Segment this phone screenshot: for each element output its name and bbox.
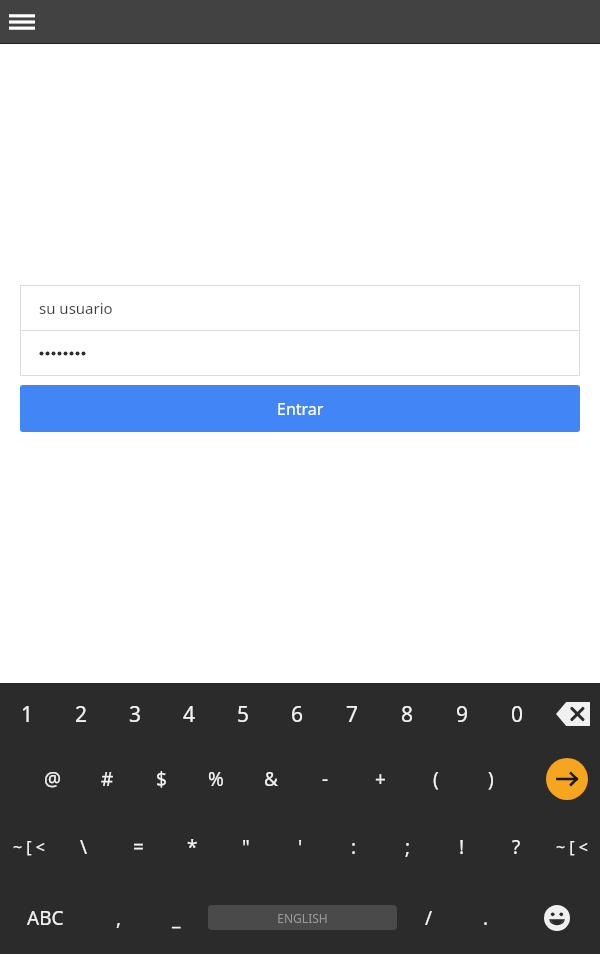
button[interactable]: 0 (490, 683, 545, 745)
button[interactable]: " (219, 813, 273, 881)
staticText: \ (80, 834, 88, 860)
staticText: & (264, 766, 278, 792)
button[interactable]: & (243, 745, 298, 813)
staticText: ; (405, 834, 411, 860)
button[interactable]: Backspace (545, 683, 600, 745)
staticText: . (483, 905, 489, 931)
staticText: ) (488, 766, 494, 792)
button[interactable]: 7 (325, 683, 380, 745)
button[interactable]: / (400, 881, 457, 954)
button[interactable]: , (90, 881, 148, 954)
staticText: % (208, 766, 224, 792)
staticText: @ (44, 766, 62, 792)
button[interactable]: Emoji (514, 881, 600, 954)
staticText: _ (172, 905, 181, 931)
staticText: + (375, 766, 386, 792)
button[interactable]: Entrar (20, 385, 580, 432)
button[interactable]: \ (57, 813, 111, 881)
staticText: $ (156, 766, 167, 792)
staticText: # (101, 766, 114, 792)
staticText: 9 (456, 700, 469, 729)
button[interactable]: 3 (108, 683, 162, 745)
button[interactable]: ( (408, 745, 463, 813)
staticText: 7 (346, 700, 359, 729)
button[interactable]: @ (26, 745, 80, 813)
button[interactable]: 8 (380, 683, 435, 745)
button[interactable]: ~ [ < (0, 813, 57, 881)
button[interactable]: : (327, 813, 381, 881)
staticText: ' (298, 834, 303, 860)
staticText: 8 (401, 700, 414, 729)
button[interactable]: ABC (0, 881, 90, 954)
button[interactable]: - (298, 745, 353, 813)
staticText: ENGLISH (277, 910, 328, 926)
button[interactable]: Open navigation menu (0, 0, 44, 44)
button[interactable]: ? (489, 813, 543, 881)
button[interactable]: % (188, 745, 243, 813)
button[interactable]: $ (134, 745, 188, 813)
button[interactable]: ~ [ < (543, 813, 600, 881)
staticText: 4 (183, 700, 196, 729)
button[interactable]: . (457, 881, 514, 954)
staticText: : (351, 834, 357, 860)
button[interactable]: ENGLISH (205, 881, 400, 954)
staticText: = (133, 834, 144, 860)
button[interactable]: su usuario (20, 285, 580, 330)
button[interactable]: Enter (533, 745, 600, 813)
button[interactable]: = (111, 813, 165, 881)
staticText: 3 (129, 700, 142, 729)
button[interactable] (20, 331, 580, 376)
staticText: ~ [ < (13, 836, 45, 858)
button[interactable]: 4 (162, 683, 216, 745)
button[interactable]: # (80, 745, 134, 813)
button[interactable]: 2 (54, 683, 108, 745)
staticText: * (187, 834, 198, 860)
staticText: ( (433, 766, 439, 792)
button[interactable]: ; (381, 813, 435, 881)
button[interactable]: ) (463, 745, 518, 813)
staticText: 5 (237, 700, 250, 729)
button[interactable]: 1 (0, 683, 54, 745)
button[interactable]: 9 (435, 683, 490, 745)
button[interactable]: * (165, 813, 219, 881)
button[interactable]: 6 (270, 683, 325, 745)
staticText: ! (459, 834, 465, 860)
button[interactable]: ! (435, 813, 489, 881)
button[interactable]: ' (273, 813, 327, 881)
staticText: su usuario (39, 298, 113, 318)
staticText: ~ [ < (556, 836, 588, 858)
staticText: 0 (511, 700, 524, 729)
button[interactable]: _ (148, 881, 205, 954)
staticText: " (242, 834, 250, 860)
staticText: - (322, 766, 329, 792)
staticText: ? (512, 834, 521, 860)
staticText: , (116, 905, 122, 931)
staticText: 6 (291, 700, 304, 729)
button[interactable]: 5 (216, 683, 270, 745)
button[interactable]: + (353, 745, 408, 813)
staticText: Entrar (277, 398, 324, 420)
staticText: 2 (75, 700, 88, 729)
staticText: / (425, 905, 433, 931)
staticText: ABC (27, 905, 64, 931)
staticText: 1 (21, 700, 34, 729)
